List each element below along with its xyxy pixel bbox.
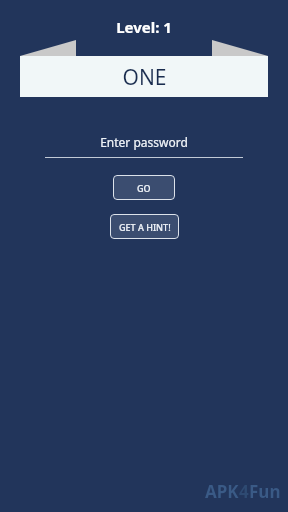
staticText: 4: [239, 480, 249, 503]
button[interactable]: Enter password: [0, 134, 288, 158]
staticText: Fun: [249, 480, 281, 503]
staticText: ONE: [122, 63, 167, 92]
staticText: Level: 1: [116, 17, 172, 37]
staticText: Enter password: [100, 134, 188, 150]
button[interactable]: GET A HINT!: [110, 214, 179, 239]
staticText: APK: [205, 480, 239, 503]
staticText: GET A HINT!: [119, 221, 171, 233]
button[interactable]: GO: [113, 175, 175, 200]
staticText: GO: [137, 182, 151, 194]
